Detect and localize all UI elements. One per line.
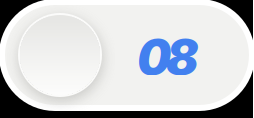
- staticText: 08: [137, 28, 199, 86]
- button[interactable]: Toggle, value 08: [0, 0, 254, 112]
